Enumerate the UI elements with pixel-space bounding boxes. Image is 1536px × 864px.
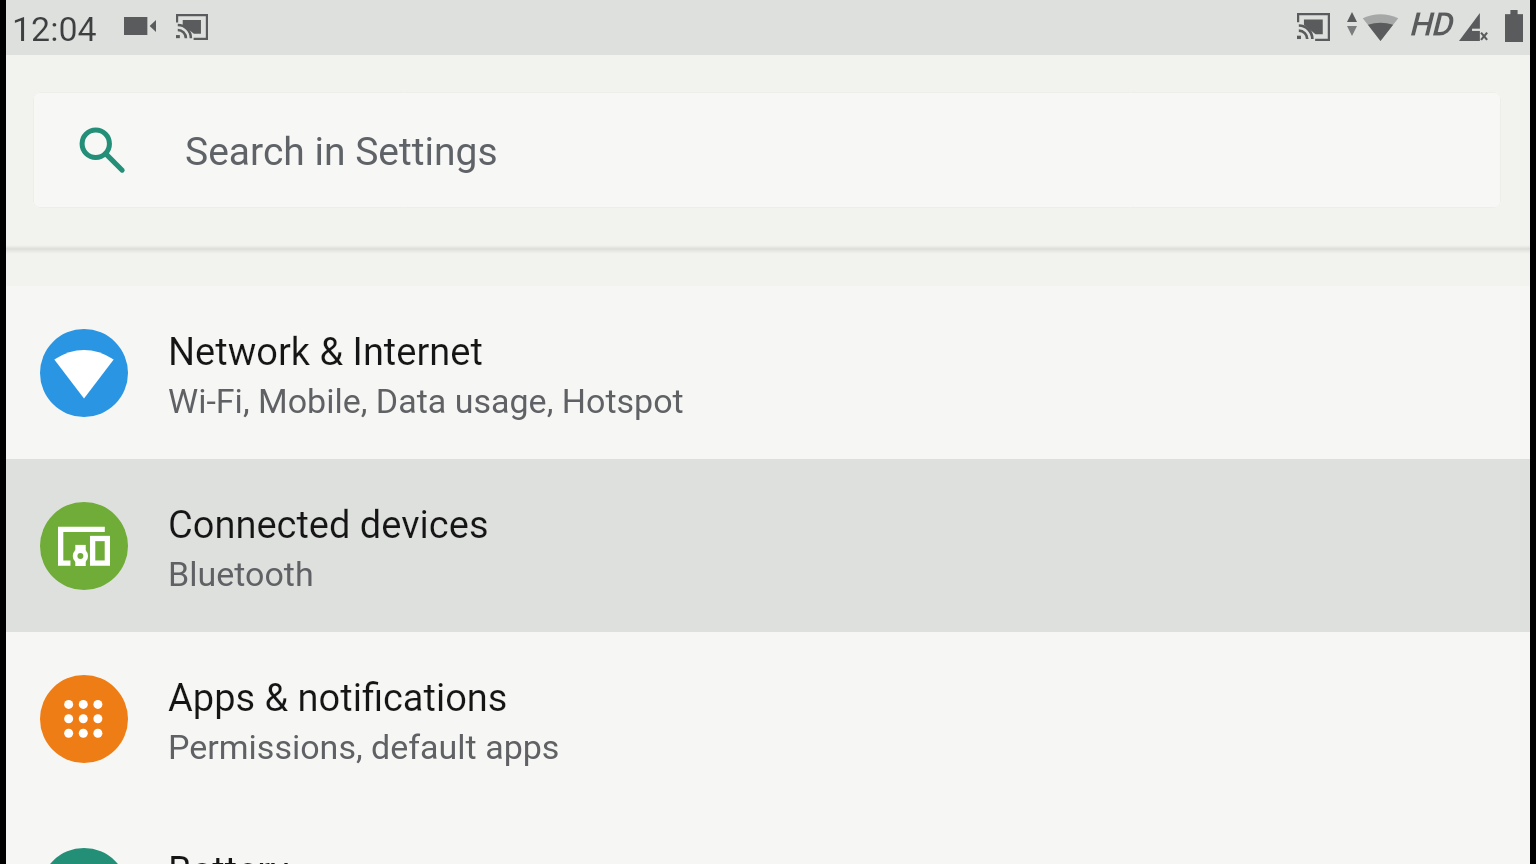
staticText: Wi-Fi, Mobile, Data usage, Hotspot	[168, 381, 684, 421]
staticText: Connected devices	[168, 503, 489, 548]
other: Cast	[176, 14, 208, 40]
staticText: HD	[1409, 6, 1452, 42]
staticText: Apps & notifications	[168, 676, 508, 721]
staticText: Search in Settings	[185, 129, 498, 175]
staticText: Battery	[168, 849, 289, 864]
staticText: 12:04	[12, 9, 97, 49]
button[interactable]: Apps & notifications	[6, 632, 1530, 805]
button[interactable]: Connected devices	[6, 459, 1530, 632]
button[interactable]: Battery	[6, 805, 1530, 864]
staticText: Network & Internet	[168, 330, 483, 375]
staticText: Permissions, default apps	[168, 727, 560, 767]
button[interactable]: Search	[33, 92, 1501, 208]
button[interactable]: Network & Internet	[6, 286, 1530, 459]
other: Search	[78, 126, 126, 174]
staticText: Bluetooth	[168, 554, 314, 594]
